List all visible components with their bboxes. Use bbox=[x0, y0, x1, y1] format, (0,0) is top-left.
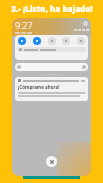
button[interactable]: Mobile data bbox=[48, 37, 56, 45]
button[interactable]: Flashlight bbox=[77, 37, 85, 45]
staticText: 3.- ¡Listo, ha bajado! bbox=[11, 3, 93, 14]
staticText: 9:27 bbox=[15, 19, 33, 31]
button[interactable]: Brightness bbox=[15, 63, 88, 71]
button[interactable]: ¡Cómprame ahora! bbox=[15, 77, 88, 101]
button[interactable]: Settings bbox=[83, 21, 88, 26]
button[interactable]: Bluetooth bbox=[33, 37, 41, 45]
button[interactable]: Clear all notifications bbox=[46, 156, 57, 167]
button[interactable]: Do not disturb bbox=[62, 37, 70, 45]
button[interactable]: Wi-Fi bbox=[18, 37, 26, 45]
staticText: ¡Cómprame ahora! bbox=[18, 84, 60, 90]
button[interactable] bbox=[17, 47, 86, 52]
